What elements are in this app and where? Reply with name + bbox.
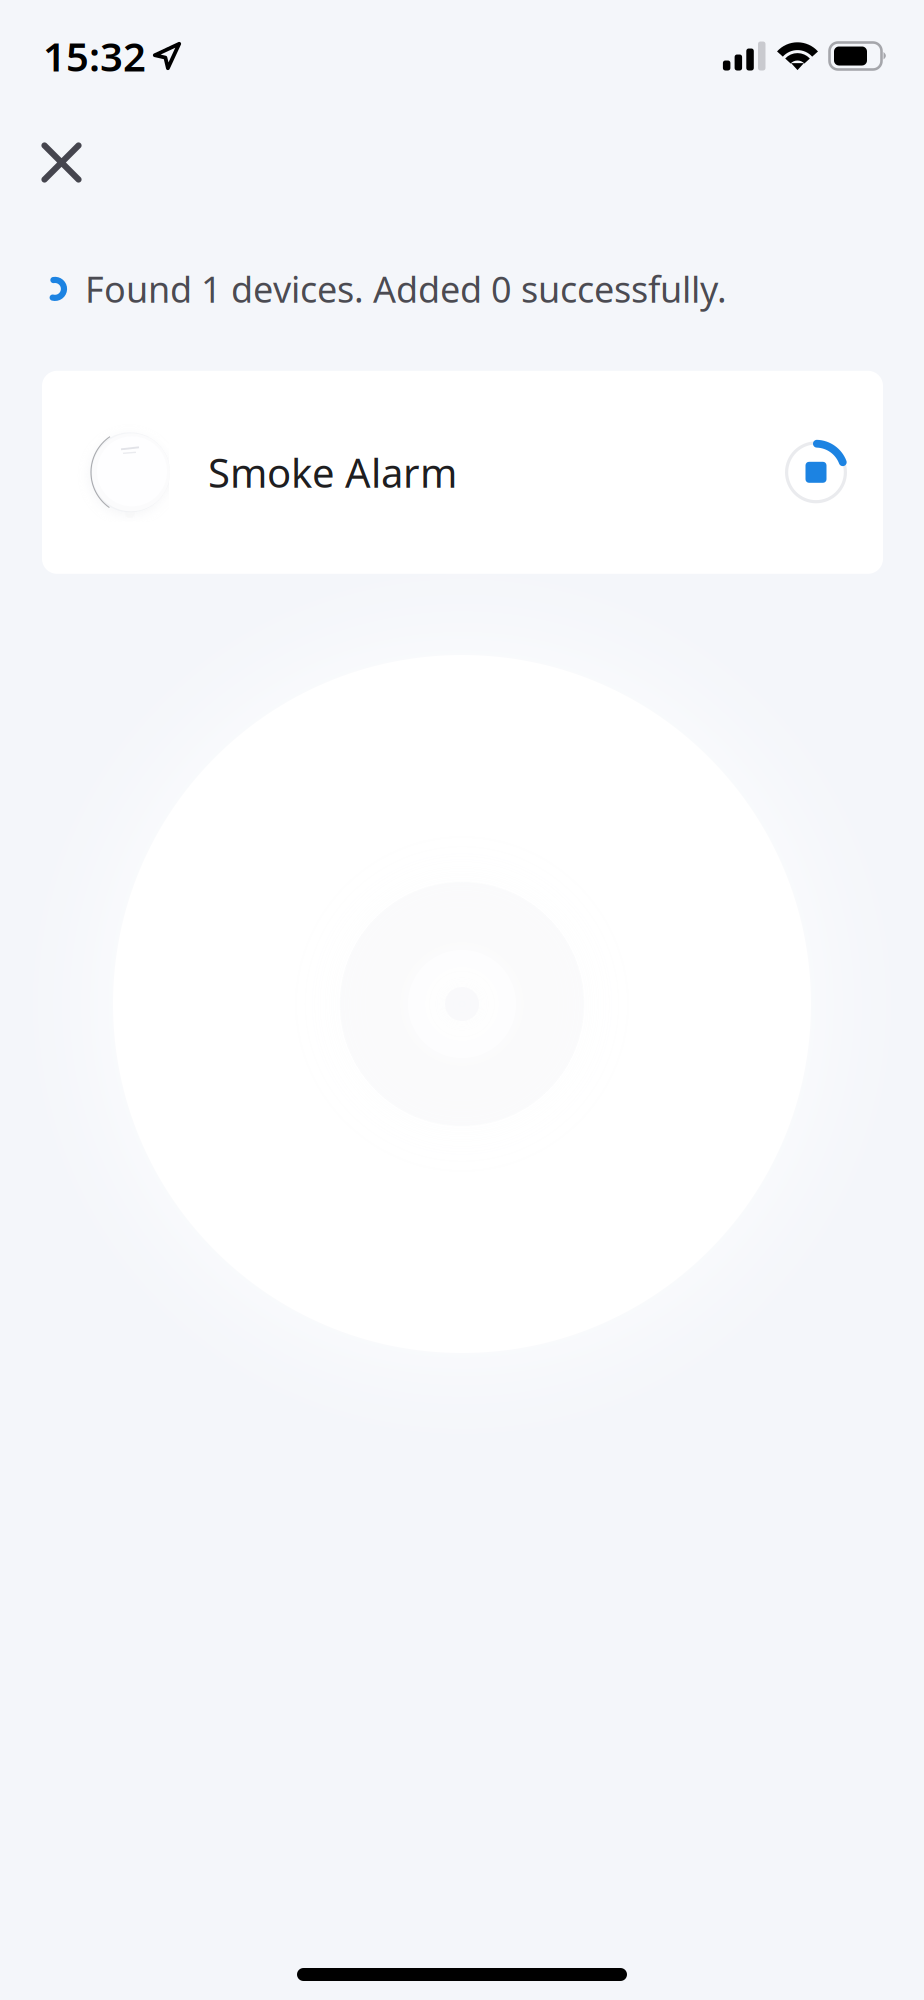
staticText: 15:32 (43, 29, 146, 82)
button[interactable]: Close (0, 124, 108, 201)
staticText: Found 1 devices. Added 0 successfully. (85, 265, 727, 313)
staticText: Smoke Alarm (208, 446, 457, 499)
button[interactable]: Smoke Alarm (42, 371, 883, 574)
